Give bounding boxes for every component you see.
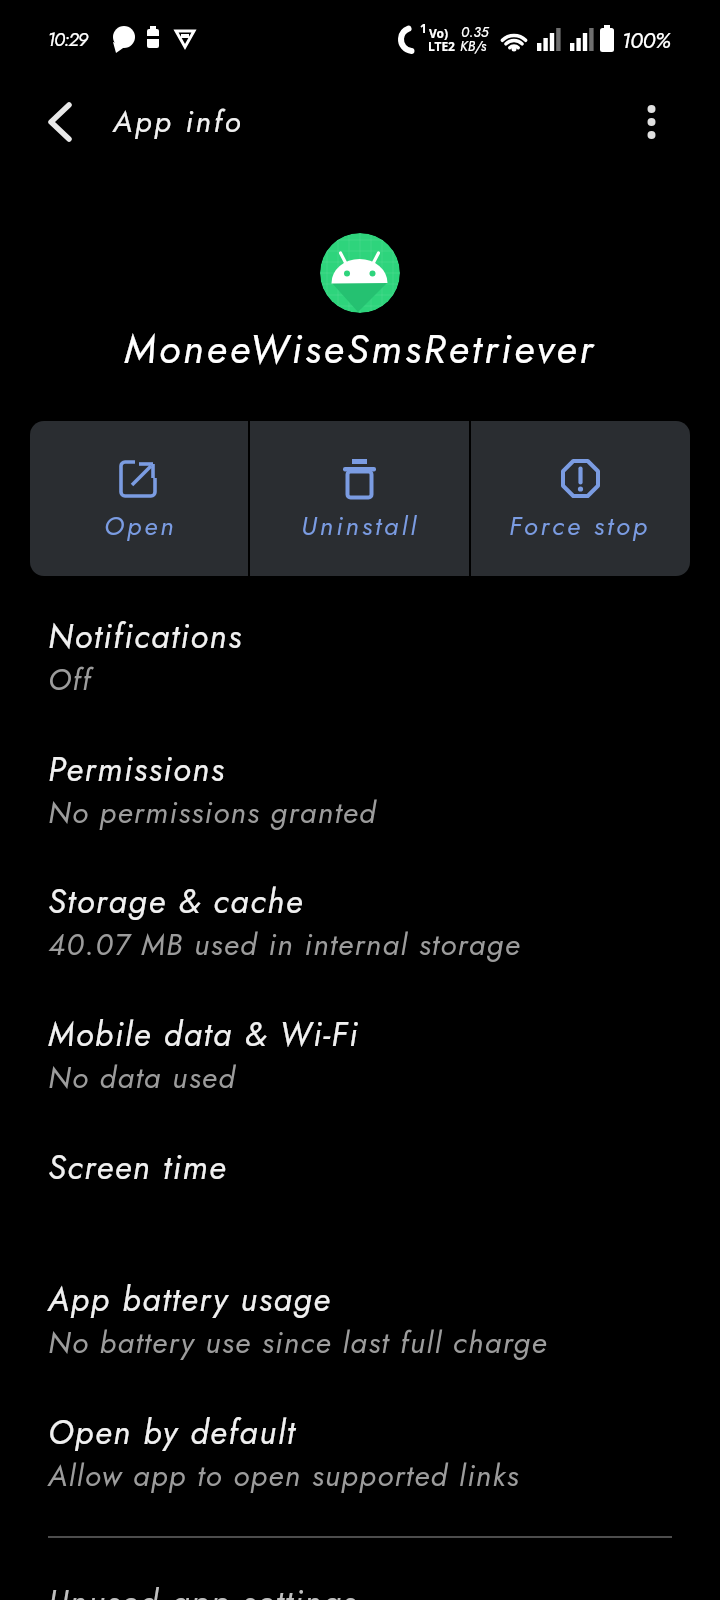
button[interactable]: App battery usage [0,1276,720,1391]
staticText: MoneeWiseSmsRetriever [124,320,596,378]
staticText: LTE2 [428,38,455,54]
staticText: 40.07 MB used in internal storage [48,923,522,966]
staticText: App info [113,100,244,143]
staticText: Screen time [48,1144,228,1192]
staticText: Off [48,658,92,701]
staticText: Permissions [48,746,226,794]
button[interactable]: Open by default [0,1409,720,1524]
button[interactable]: Mobile data & Wi-Fi [0,1011,720,1126]
button[interactable] [30,421,248,576]
staticText: Vo) [429,25,449,41]
staticText: No permissions granted [48,791,378,834]
staticText: Open by default [48,1409,297,1457]
button[interactable]: Unused app settings [0,1579,720,1600]
staticText: Allow app to open supported links [48,1454,520,1497]
staticText: Unused app settings [48,1579,358,1600]
staticText: KB/s [460,36,487,56]
staticText: Open [104,507,177,545]
staticText: 100% [621,24,671,56]
button[interactable]: Screen time [0,1144,720,1259]
button[interactable] [250,421,469,576]
staticText: 10:29 [47,26,87,53]
staticText: Storage & cache [48,878,304,926]
staticText: Force stop [509,507,651,545]
staticText: 1 [420,20,427,36]
staticText: No data used [48,1056,237,1099]
staticText: 0.35 [461,22,489,42]
staticText: Notifications [48,613,243,661]
button[interactable]: Storage & cache [0,878,720,993]
button[interactable] [471,421,690,576]
staticText: Mobile data & Wi-Fi [48,1011,360,1059]
staticText: App battery usage [48,1276,332,1324]
button[interactable]: Notifications [0,613,720,728]
staticText: Uninstall [301,507,420,545]
button[interactable]: App info [0,90,720,154]
staticText: No battery use since last full charge [48,1321,548,1364]
button[interactable]: Permissions [0,746,720,861]
